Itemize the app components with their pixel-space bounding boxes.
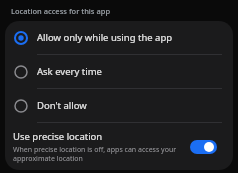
staticText: Don't allow [37,99,87,112]
staticText: When precise location is off, apps can a… [13,145,185,163]
button[interactable]: Use precise location toggle [185,123,221,170]
button[interactable]: Ask every time [5,55,233,88]
staticText: Allow only while using the app [37,31,173,44]
button[interactable]: Allow only while using the app [5,21,233,54]
staticText: Location access for this app [11,6,111,16]
button[interactable]: Use precise location [5,123,233,170]
staticText: Ask every time [37,65,102,78]
staticText: Use precise location [13,130,103,143]
button[interactable]: Don't allow [5,89,233,122]
